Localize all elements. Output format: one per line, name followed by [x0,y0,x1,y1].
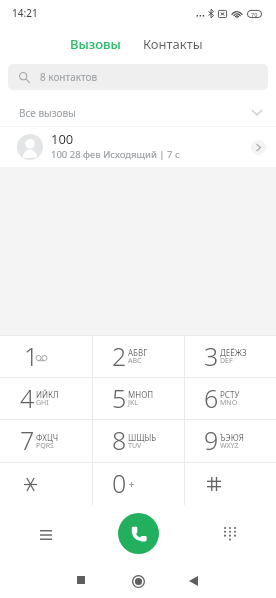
staticText: JKL [128,398,138,408]
button[interactable]: 8 контактов [8,64,268,90]
staticText: 100 [51,130,74,148]
staticText: АБВГ [128,347,148,358]
staticText: TUV [128,441,142,451]
button[interactable]: 8 [92,420,184,462]
staticText: Контакты [143,35,203,53]
staticText: РСТУ [220,389,240,400]
button[interactable]: 6 [184,378,276,419]
staticText: ШЩЫЬ [128,432,157,443]
button[interactable]: 100 [0,127,276,167]
staticText: 0 [112,466,127,500]
button[interactable]: Home [115,565,161,597]
staticText: 4 [20,381,35,415]
button[interactable]: Все вызовы [0,96,276,126]
staticText: 70 [251,11,258,18]
staticText: 5 [112,381,127,415]
button[interactable]: 9 [184,420,276,462]
button[interactable]: Вызовы [56,29,132,59]
staticText: ЪЭЮЯ [220,432,244,443]
staticText: 2 [112,339,127,373]
staticText: ИЙКЛ [36,389,59,400]
button[interactable]: 0 [92,463,184,505]
button[interactable]: 7 [0,420,92,462]
staticText: 1 [24,339,39,373]
button[interactable]: 2 [92,336,184,377]
staticText: 8 [112,423,127,457]
button[interactable]: 3 [184,336,276,377]
staticText: DEF [220,356,233,366]
staticText: 100 28 фев Исходящий | 7 с [51,148,180,161]
staticText: 3 [204,339,219,373]
staticText: Вызовы [70,35,121,53]
button[interactable]: Menu [0,505,92,566]
staticText: 6 [204,381,219,415]
staticText: 9 [204,423,219,457]
button[interactable]: Dialpad [184,505,276,566]
button[interactable]: 5 [92,378,184,419]
staticText: ABC [128,356,142,366]
staticText: МНОП [128,389,154,400]
staticText: Все вызовы [19,106,76,120]
button[interactable]: Recent apps [58,566,104,598]
staticText: PQRS [36,441,54,451]
staticText: 7 [20,423,35,457]
staticText: WXYZ [220,441,239,451]
staticText: ФХЦЧ [36,432,59,443]
button[interactable]: Call [118,513,159,554]
staticText: MNO [220,398,238,408]
button[interactable]: 4 [0,378,92,419]
button[interactable]: Back [170,566,216,598]
staticText: ДЕЁЖЗ [220,347,247,358]
staticText: GHI [36,398,49,408]
button[interactable]: Контакты [132,29,217,59]
staticText: 8 контактов [40,70,98,84]
button[interactable]: Call details [251,140,266,155]
button[interactable] [0,463,92,505]
staticText: 14:21 [12,6,38,20]
button[interactable]: 1 [0,336,92,377]
button[interactable] [184,463,276,505]
